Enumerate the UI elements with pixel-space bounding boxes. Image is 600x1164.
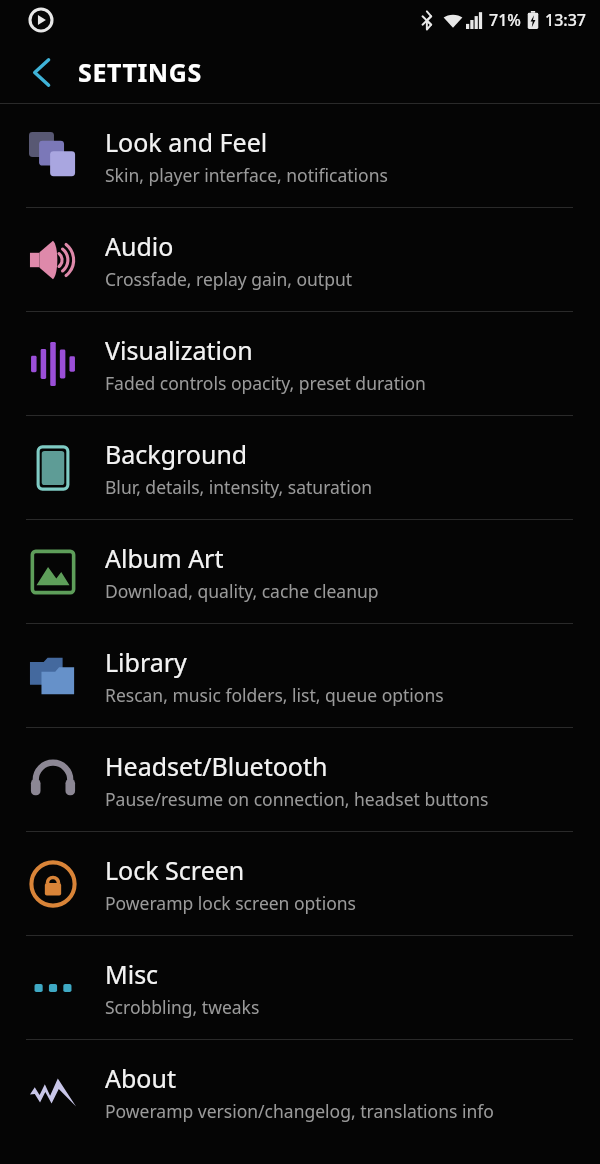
staticText: Poweramp lock screen options	[105, 891, 356, 915]
button[interactable]: Audio	[0, 208, 600, 311]
button[interactable]: Background	[0, 416, 600, 519]
staticText: Rescan, music folders, list, queue optio…	[105, 683, 444, 707]
staticText: Look and Feel	[105, 125, 268, 159]
staticText: 71%	[489, 9, 521, 31]
staticText: Blur, details, intensity, saturation	[105, 475, 373, 499]
staticText: Download, quality, cache cleanup	[105, 579, 379, 603]
button[interactable]: Lock Screen	[0, 832, 600, 935]
button[interactable]: Visualization	[0, 312, 600, 415]
button[interactable]: Look and Feel	[0, 104, 600, 207]
staticText: SETTINGS	[78, 55, 202, 89]
staticText: Skin, player interface, notifications	[105, 163, 388, 187]
staticText: Audio	[105, 229, 174, 263]
staticText: Poweramp version/changelog, translations…	[105, 1099, 494, 1123]
staticText: Lock Screen	[105, 853, 245, 887]
button[interactable]: Headset/Bluetooth	[0, 728, 600, 831]
staticText: Scrobbling, tweaks	[105, 995, 260, 1019]
button[interactable]: Library	[0, 624, 600, 727]
staticText: Crossfade, replay gain, output	[105, 267, 353, 291]
staticText: 13:37	[545, 9, 586, 31]
staticText: Background	[105, 437, 248, 471]
staticText: Pause/resume on connection, headset butt…	[105, 787, 489, 811]
staticText: Headset/Bluetooth	[105, 749, 328, 783]
button[interactable]: About	[0, 1040, 600, 1143]
staticText: About	[105, 1061, 176, 1095]
staticText: Visualization	[105, 333, 253, 367]
staticText: Album Art	[105, 541, 224, 575]
staticText: Misc	[105, 957, 159, 991]
staticText: Faded controls opacity, preset duration	[105, 371, 426, 395]
button[interactable]: Back	[18, 49, 64, 95]
staticText: Library	[105, 645, 187, 679]
button[interactable]: Misc	[0, 936, 600, 1039]
button[interactable]: Album Art	[0, 520, 600, 623]
